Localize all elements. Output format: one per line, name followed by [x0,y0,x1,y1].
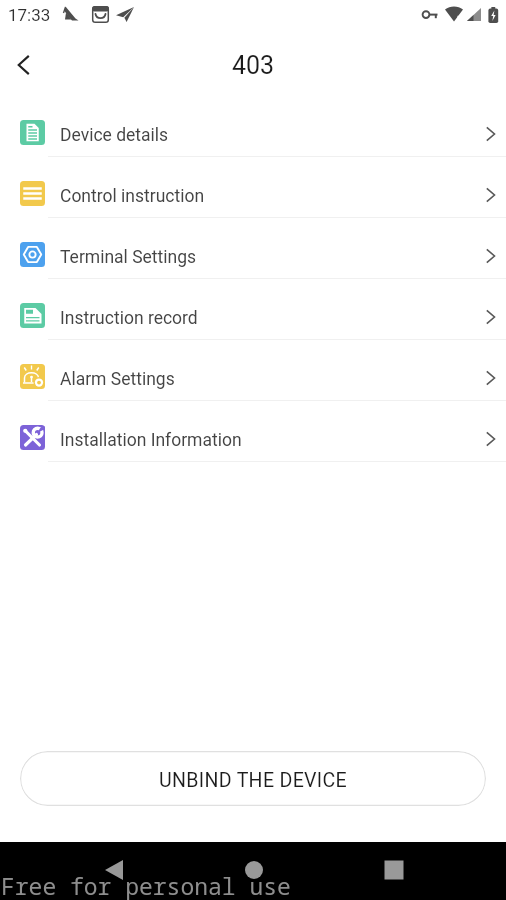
staticText: Free for personal use [1,870,291,900]
button[interactable]: Installation Information [0,401,506,462]
staticText: UNBIND THE DEVICE [159,769,347,792]
staticText: Installation Information [60,430,242,451]
button[interactable]: Back [64,842,159,900]
staticText: Instruction record [60,308,198,329]
staticText: Terminal Settings [60,247,197,268]
staticText: Alarm Settings [60,369,175,390]
staticText: 403 [232,51,275,80]
button[interactable]: Device details [0,96,506,157]
button[interactable]: Alarm Settings [0,340,506,401]
button[interactable]: Home [205,842,302,900]
button[interactable]: Recent apps [346,842,442,900]
staticText: 17:33 [8,5,51,25]
button[interactable]: Back [2,32,46,98]
button[interactable]: Terminal Settings [0,218,506,279]
button[interactable]: UNBIND THE DEVICE [20,751,486,806]
staticText: Control instruction [60,186,205,207]
button[interactable]: Instruction record [0,279,506,340]
staticText: Device details [60,125,169,146]
button[interactable]: Control instruction [0,157,506,218]
